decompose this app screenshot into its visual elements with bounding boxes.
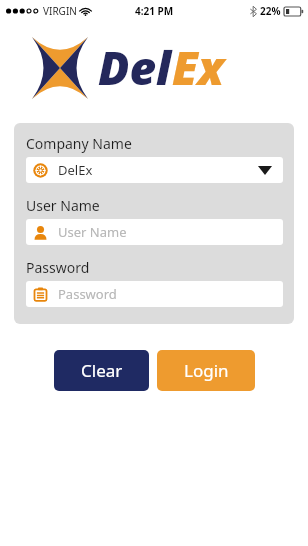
staticText: Login — [184, 359, 229, 382]
button[interactable]: Password — [26, 281, 283, 307]
staticText: Company Name — [26, 134, 132, 153]
staticText: Ex — [172, 36, 224, 99]
staticText: Del — [98, 36, 172, 99]
button[interactable]: Clear — [54, 350, 149, 391]
staticText: DelEx — [58, 161, 93, 179]
button[interactable]: User Name — [26, 219, 283, 245]
staticText: Password — [26, 258, 90, 277]
button[interactable]: Login — [157, 350, 255, 391]
staticText: 4:21 PM — [135, 4, 174, 18]
staticText: Clear — [81, 359, 123, 382]
staticText: VIRGIN — [43, 4, 77, 18]
staticText: 22% — [260, 4, 281, 18]
button[interactable]: DelEx — [26, 157, 283, 183]
staticText: User Name — [26, 196, 100, 215]
staticText: Password — [58, 285, 117, 303]
staticText: User Name — [58, 223, 127, 241]
